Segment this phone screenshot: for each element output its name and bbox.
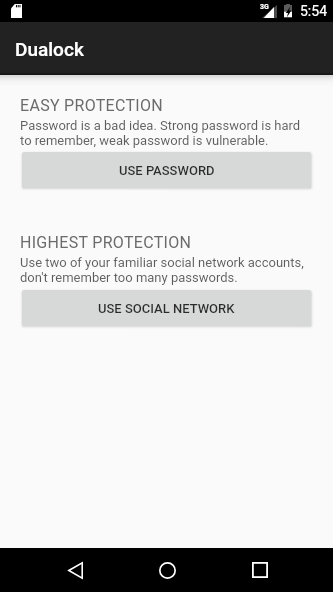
staticText: USE PASSWORD <box>119 163 215 178</box>
button[interactable]: USE PASSWORD <box>22 152 311 188</box>
button[interactable]: USE SOCIAL NETWORK <box>22 290 311 326</box>
staticText: EASY PROTECTION <box>20 96 164 115</box>
staticText: Dualock <box>15 38 84 60</box>
staticText: HIGHEST PROTECTION <box>20 233 192 252</box>
staticText: 5:54 <box>300 3 327 19</box>
button[interactable]: Recents <box>236 549 284 591</box>
staticText: 3G <box>260 3 269 11</box>
staticText: USE SOCIAL NETWORK <box>98 301 235 316</box>
staticText: Use two of your familiar social network … <box>20 255 313 285</box>
button[interactable]: Back <box>51 549 99 591</box>
staticText: Password is a bad idea. Strong password … <box>20 118 313 148</box>
button[interactable]: Home <box>143 549 191 591</box>
